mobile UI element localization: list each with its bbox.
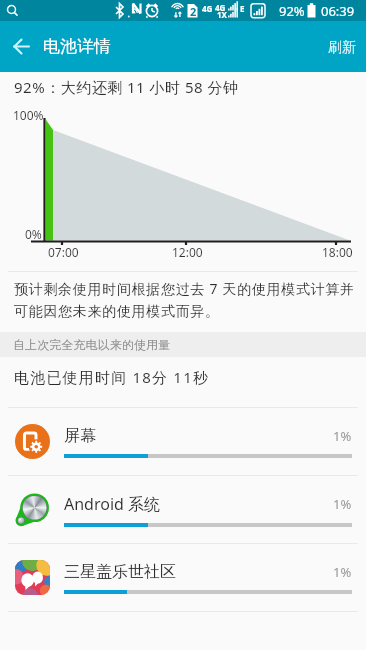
button[interactable]: 屏幕 xyxy=(0,408,366,475)
button[interactable]: Back xyxy=(0,21,44,72)
staticText: 屏幕 xyxy=(64,426,96,446)
staticText: 18:00 xyxy=(322,244,353,260)
staticText: 电池已使用时间 18分 11秒 xyxy=(14,367,210,387)
button[interactable]: 刷新 xyxy=(314,21,366,72)
staticText: E xyxy=(240,3,245,14)
staticText: 2 xyxy=(190,4,197,19)
staticText: 07:00 xyxy=(48,244,79,260)
staticText: 0% xyxy=(25,226,42,242)
staticText: 4G xyxy=(202,3,213,14)
staticText: 三星盖乐世社区 xyxy=(64,562,176,582)
staticText: 1X xyxy=(217,9,227,20)
button[interactable]: 三星盖乐世社区 xyxy=(0,544,366,611)
staticText: 电池详情 xyxy=(43,36,111,57)
staticText: 1% xyxy=(333,495,352,513)
staticText: 预计剩余使用时间根据您过去 7 天的使用模式计算并可能因您未来的使用模式而异。 xyxy=(14,279,356,321)
staticText: 1% xyxy=(333,427,352,445)
staticText: 1% xyxy=(333,563,352,581)
staticText: 4G xyxy=(215,2,226,13)
staticText: 自上次完全充电以来的使用量 xyxy=(13,337,171,352)
staticText: 92% xyxy=(279,2,305,20)
staticText: Android 系统 xyxy=(64,493,161,515)
button[interactable]: Android 系统 xyxy=(0,476,366,543)
staticText: 06:39 xyxy=(321,2,355,20)
staticText: 92%：大约还剩 11 小时 58 分钟 xyxy=(14,77,239,97)
staticText: 12:00 xyxy=(172,244,203,260)
staticText: 刷新 xyxy=(328,39,356,57)
staticText: 100% xyxy=(13,107,44,123)
